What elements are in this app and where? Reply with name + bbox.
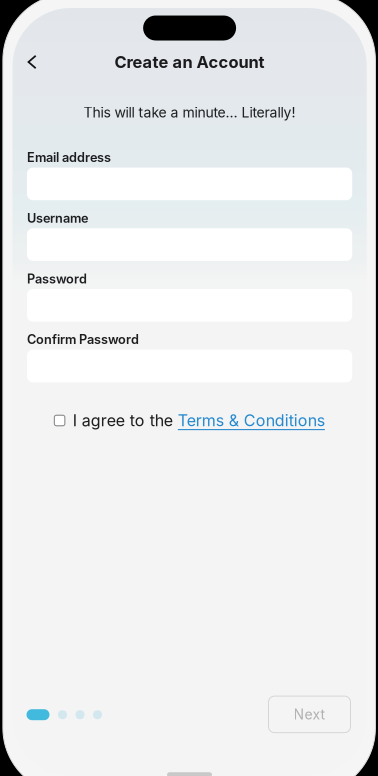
staticText: Create an Account (115, 52, 265, 72)
staticText: Confirm Password (27, 332, 139, 347)
staticText: Username (27, 210, 88, 226)
staticText: Terms & Conditions (178, 411, 325, 430)
staticText: Password (27, 271, 87, 286)
staticText: This will take a minute… Literally! (84, 104, 296, 121)
button[interactable]: Next (268, 696, 350, 733)
staticText: Next (293, 706, 325, 723)
button[interactable]: I agree to the (12, 411, 367, 429)
button[interactable]: Back (16, 46, 48, 78)
staticText: Email address (27, 150, 111, 165)
staticText: I agree to the (73, 411, 178, 430)
